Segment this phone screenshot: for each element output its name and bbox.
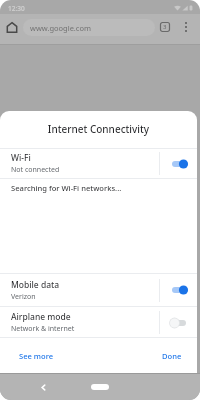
- staticText: Not connected: [11, 165, 60, 175]
- button[interactable]: More options: [177, 18, 195, 36]
- staticText: Verizon: [11, 292, 36, 302]
- staticText: www.google.com: [30, 23, 92, 33]
- staticText: Wi-Fi: [11, 152, 31, 164]
- staticText: See more: [19, 351, 54, 361]
- staticText: Searching for Wi-Fi networks...: [11, 183, 122, 193]
- button[interactable]: Airplane mode: [0, 307, 159, 338]
- button[interactable]: See more: [0, 345, 64, 367]
- staticText: 12:30: [8, 4, 25, 13]
- button[interactable]: Done: [152, 345, 197, 367]
- staticText: Internet Connectivity: [0, 122, 197, 136]
- button[interactable]: www.google.com: [23, 19, 155, 36]
- button[interactable]: Mobile data: [0, 274, 159, 306]
- button[interactable]: Back: [33, 377, 53, 397]
- staticText: 3: [163, 23, 167, 31]
- staticText: Done: [162, 351, 182, 361]
- staticText: Mobile data: [11, 279, 60, 291]
- staticText: Network & internet: [11, 324, 75, 334]
- button[interactable]: Wi-Fi toggle: [160, 149, 197, 178]
- button[interactable]: Airplane mode toggle: [160, 307, 197, 338]
- button[interactable]: Mobile data toggle: [160, 274, 197, 306]
- staticText: Airplane mode: [11, 311, 71, 323]
- button[interactable]: Home: [3, 18, 21, 36]
- button[interactable]: Wi-Fi: [0, 149, 159, 178]
- button[interactable]: Tabs: [156, 18, 174, 36]
- button[interactable]: Home: [91, 384, 109, 390]
